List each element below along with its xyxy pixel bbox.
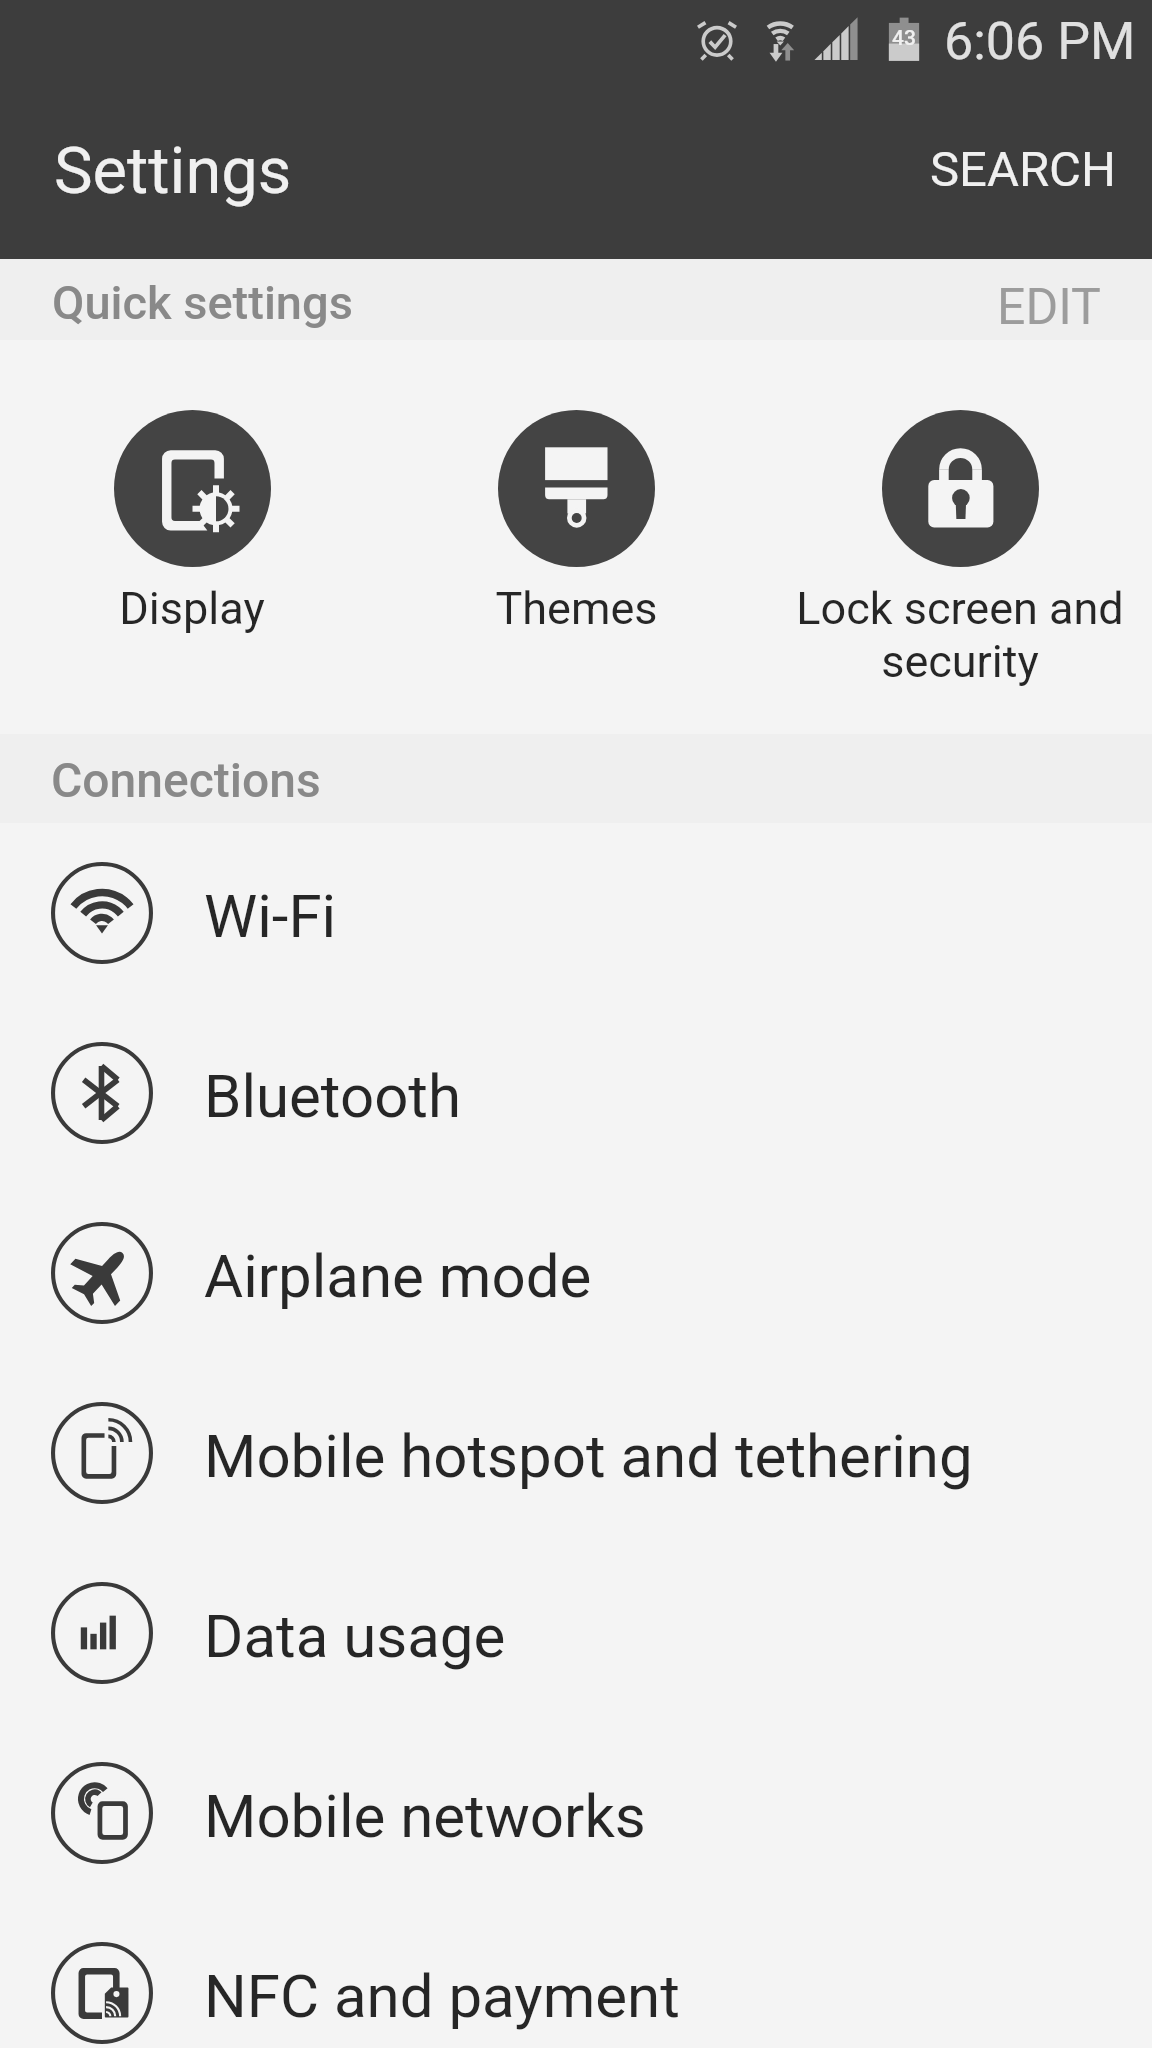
staticText: Themes [495, 582, 658, 635]
staticText: Data usage [204, 1601, 506, 1671]
staticText: EDIT [997, 278, 1101, 337]
staticText: NFC and payment [204, 1961, 680, 2031]
staticText: Wi-Fi [204, 881, 337, 951]
button[interactable]: NFC and payment [0, 1903, 1152, 2048]
staticText: Bluetooth [204, 1061, 462, 1131]
button[interactable]: Data usage [0, 1543, 1152, 1723]
button[interactable]: Display [0, 340, 384, 734]
staticText: Mobile hotspot and tethering [204, 1421, 973, 1491]
button[interactable]: Lock screen and security [768, 340, 1152, 734]
staticText: SEARCH [930, 141, 1116, 198]
button[interactable]: Themes [384, 340, 768, 734]
staticText: Settings [54, 133, 292, 209]
staticText: 6:06 PM [944, 11, 1136, 72]
button[interactable]: Mobile networks [0, 1723, 1152, 1903]
staticText: Quick settings [52, 275, 353, 330]
staticText: Lock screen and security [796, 582, 1124, 688]
staticText: Display [119, 582, 265, 635]
button[interactable]: Airplane mode [0, 1183, 1152, 1363]
button[interactable]: Bluetooth [0, 1003, 1152, 1183]
button[interactable]: SEARCH [890, 88, 1152, 259]
button[interactable]: Wi-Fi [0, 823, 1152, 1003]
staticText: Mobile networks [204, 1781, 646, 1851]
staticText: 43 [892, 26, 916, 51]
button[interactable]: EDIT [953, 259, 1152, 340]
button[interactable]: Mobile hotspot and tethering [0, 1363, 1152, 1543]
staticText: Connections [51, 752, 321, 808]
staticText: Airplane mode [204, 1241, 592, 1311]
